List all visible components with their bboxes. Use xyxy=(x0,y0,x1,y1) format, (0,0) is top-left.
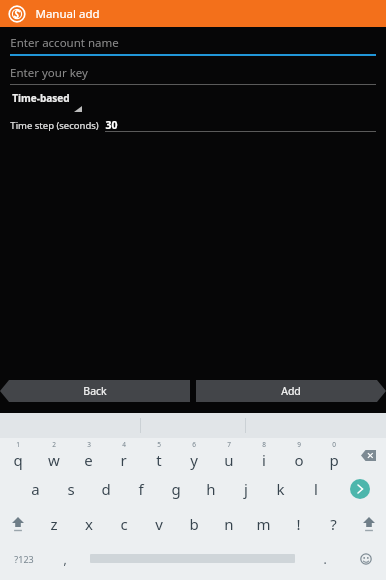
button[interactable]: j xyxy=(228,472,263,506)
staticText: b xyxy=(189,514,199,534)
staticText: g xyxy=(171,479,181,499)
button[interactable]: c xyxy=(106,506,141,541)
staticText: 7 xyxy=(227,440,231,449)
staticText: 4 xyxy=(122,440,126,449)
staticText: . xyxy=(323,551,327,567)
button[interactable]: ? xyxy=(316,506,351,541)
staticText: p xyxy=(329,450,339,470)
staticText: i xyxy=(262,450,266,470)
button[interactable]: , xyxy=(48,541,81,576)
button[interactable]: 9 xyxy=(281,438,316,472)
button[interactable]: ?123 xyxy=(0,541,48,576)
staticText: ! xyxy=(296,514,301,534)
staticText: z xyxy=(50,514,58,534)
button[interactable]: 7 xyxy=(211,438,246,472)
staticText: , xyxy=(63,551,67,567)
staticText: Manual add xyxy=(35,6,100,22)
staticText: k xyxy=(276,479,285,499)
button[interactable]: 2 xyxy=(36,438,71,472)
staticText: u xyxy=(224,450,234,470)
staticText: v xyxy=(155,514,163,534)
staticText: 1 xyxy=(16,440,20,449)
button[interactable]: ! xyxy=(281,506,316,541)
staticText: 8 xyxy=(262,440,266,449)
button[interactable]: g xyxy=(158,472,193,506)
button[interactable]: 4 xyxy=(106,438,141,472)
staticText: s xyxy=(67,479,75,499)
button[interactable]: m xyxy=(246,506,281,541)
staticText: 30 xyxy=(105,118,118,131)
staticText: Time-based xyxy=(12,91,70,105)
button[interactable]: 6 xyxy=(176,438,211,472)
staticText: r xyxy=(120,450,127,470)
button[interactable]: z xyxy=(36,506,71,541)
button[interactable]: Time-based xyxy=(12,91,82,113)
staticText: Enter your key xyxy=(10,65,88,81)
button[interactable]: x xyxy=(71,506,106,541)
staticText: 3 xyxy=(87,440,91,449)
button[interactable]: b xyxy=(176,506,211,541)
button[interactable]: Enter account name xyxy=(10,34,376,56)
button[interactable]: l xyxy=(298,472,333,506)
button[interactable]: Enter xyxy=(333,472,386,506)
staticText: f xyxy=(138,479,144,499)
button[interactable]: k xyxy=(263,472,298,506)
staticText: j xyxy=(244,479,248,499)
staticText: ?123 xyxy=(14,553,34,565)
button[interactable]: Shift xyxy=(351,506,386,541)
button[interactable]: Shift xyxy=(0,506,36,541)
button[interactable]: 1 xyxy=(0,438,36,472)
button[interactable]: v xyxy=(141,506,176,541)
button[interactable]: d xyxy=(88,472,123,506)
staticText: x xyxy=(85,514,93,534)
button[interactable]: a xyxy=(18,472,53,506)
staticText: c xyxy=(120,514,128,534)
button[interactable]: 0 xyxy=(316,438,351,472)
staticText: 6 xyxy=(192,440,196,449)
button[interactable]: 3 xyxy=(71,438,106,472)
button[interactable]: Back xyxy=(0,380,190,402)
staticText: o xyxy=(294,450,304,470)
staticText: e xyxy=(84,450,93,470)
button[interactable]: 5 xyxy=(141,438,176,472)
button[interactable]: f xyxy=(123,472,158,506)
button[interactable]: Backspace xyxy=(351,438,386,472)
button[interactable]: Emoji xyxy=(345,541,386,576)
button[interactable]: . xyxy=(304,541,345,576)
staticText: y xyxy=(190,450,198,470)
staticText: Back xyxy=(83,384,107,398)
button[interactable]: 8 xyxy=(246,438,281,472)
button[interactable]: Space xyxy=(81,541,304,576)
staticText: 2 xyxy=(52,440,56,449)
staticText: 5 xyxy=(157,440,161,449)
staticText: w xyxy=(48,450,60,470)
staticText: n xyxy=(224,514,234,534)
staticText: l xyxy=(314,479,318,499)
staticText: q xyxy=(13,450,23,470)
staticText: a xyxy=(31,479,40,499)
staticText: 9 xyxy=(297,440,301,449)
button[interactable]: Enter your key xyxy=(10,64,376,85)
staticText: Enter account name xyxy=(10,35,119,51)
button[interactable]: 30 xyxy=(105,118,376,132)
staticText: d xyxy=(101,479,111,499)
staticText: 0 xyxy=(332,440,336,449)
button[interactable]: s xyxy=(53,472,88,506)
button[interactable]: h xyxy=(193,472,228,506)
staticText: h xyxy=(206,479,216,499)
staticText: ? xyxy=(330,514,337,534)
staticText: Add xyxy=(281,384,301,398)
button[interactable]: Add xyxy=(196,380,386,402)
button[interactable]: n xyxy=(211,506,246,541)
staticText: m xyxy=(256,514,271,534)
staticText: t xyxy=(156,450,162,470)
staticText: Time step (seconds) xyxy=(10,119,99,132)
